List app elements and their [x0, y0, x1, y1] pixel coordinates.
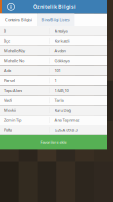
staticText: Avdan [54, 48, 65, 53]
staticText: Tarla [54, 98, 63, 103]
staticText: Zemin Tip [4, 117, 21, 123]
staticText: Gökkaya [54, 58, 69, 63]
staticText: Pafta [4, 127, 12, 133]
staticText: Ada [4, 68, 11, 73]
staticText: Vasfı [4, 98, 12, 103]
staticText: İl [4, 28, 6, 34]
staticText: Kuru Dağ [54, 107, 70, 113]
staticText: İlçe [4, 38, 10, 43]
staticText: 101 [54, 68, 60, 73]
staticText: Mevkii [4, 107, 16, 113]
button[interactable]: Favorilere ekle [0, 135, 107, 149]
staticText: Parsel [4, 78, 15, 83]
button[interactable]: Bilgi [2, 3, 15, 11]
staticText: Favorilere ekle [40, 139, 66, 145]
staticText: 1 [54, 78, 56, 83]
staticText: Öznitelik Bilgisi [33, 3, 76, 10]
staticText: Korkuteli [54, 38, 69, 43]
staticText: G26-A-09-B-3 [54, 127, 77, 133]
staticText: Mahalle/Köy [4, 48, 25, 53]
staticText: Tapu Alanı [4, 88, 22, 93]
staticText: Mahalle No [4, 58, 24, 63]
button[interactable]: Bina/Bilgi Listesi [37, 14, 74, 26]
staticText: 1.645,10 [54, 88, 68, 93]
staticText: Ana Taşınmaz [54, 117, 79, 123]
staticText: Antalya [54, 28, 67, 34]
button[interactable]: Contains Bilgisi [0, 14, 37, 26]
staticText: Contains Bilgisi [5, 17, 32, 22]
staticText: Bina/Bilgi Listesi [41, 17, 70, 22]
